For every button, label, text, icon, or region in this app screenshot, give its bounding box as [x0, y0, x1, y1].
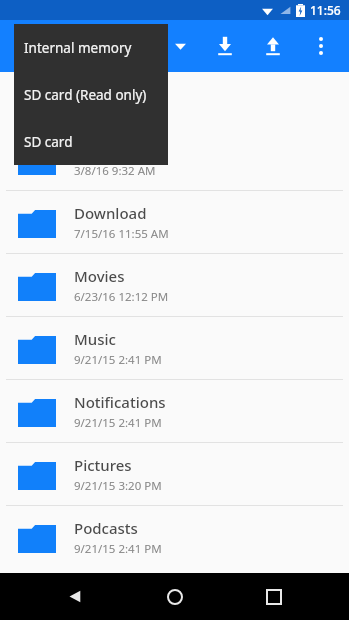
- staticText: 3/8/16 9:32 AM: [74, 163, 156, 179]
- staticText: 9/21/15 2:41 PM: [74, 415, 162, 431]
- staticText: Movies: [74, 266, 125, 286]
- button[interactable]: Back: [51, 573, 99, 620]
- button[interactable]: Podcasts: [0, 506, 349, 568]
- staticText: 9/21/15 3:20 PM: [74, 478, 162, 494]
- button[interactable]: SD card (Read only): [14, 71, 168, 118]
- button[interactable]: Recent apps: [250, 573, 298, 620]
- staticText: Internal memory: [24, 39, 132, 57]
- button[interactable]: Upload: [249, 22, 297, 70]
- staticText: 9/21/15 2:41 PM: [74, 541, 162, 557]
- button[interactable]: Download: [201, 22, 249, 70]
- staticText: Podcasts: [74, 518, 138, 538]
- staticText: SD card: [24, 133, 73, 151]
- staticText: 7/15/16 11:55 AM: [74, 226, 169, 242]
- button[interactable]: Home: [151, 573, 199, 620]
- staticText: Download: [74, 203, 147, 223]
- button[interactable]: Music: [0, 317, 349, 379]
- staticText: Music: [74, 329, 116, 349]
- button[interactable]: Pictures: [0, 443, 349, 505]
- button[interactable]: Internal memory: [14, 24, 168, 71]
- button[interactable]: More options: [297, 22, 345, 70]
- staticText: 11:56: [310, 2, 341, 18]
- button[interactable]: Movies: [0, 254, 349, 316]
- staticText: 6/23/16 12:12 PM: [74, 289, 169, 305]
- staticText: SD card (Read only): [24, 86, 147, 104]
- button[interactable]: Download: [0, 191, 349, 253]
- staticText: Pictures: [74, 455, 132, 475]
- staticText: 9/21/15 2:41 PM: [74, 352, 162, 368]
- button[interactable]: Select storage: [160, 26, 200, 66]
- button[interactable]: SD card: [14, 118, 168, 165]
- button[interactable]: Notifications: [0, 380, 349, 442]
- button[interactable]: Alarms: [0, 128, 349, 190]
- staticText: Notifications: [74, 392, 166, 412]
